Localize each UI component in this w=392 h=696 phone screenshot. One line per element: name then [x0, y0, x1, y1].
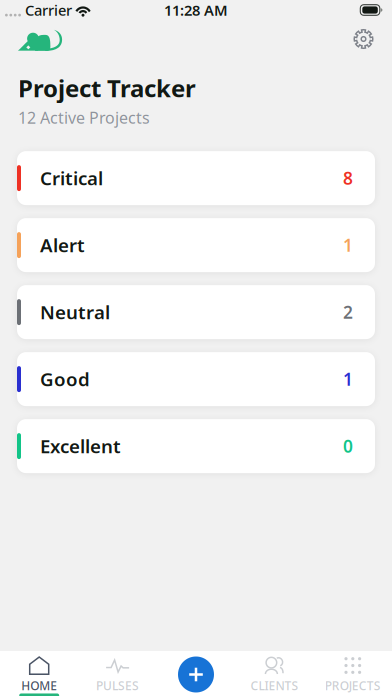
staticText: Excellent: [40, 434, 121, 458]
staticText: 1: [343, 234, 353, 257]
staticText: Good: [40, 367, 90, 391]
staticText: Carrier: [25, 0, 72, 20]
button[interactable]: Good: [17, 352, 375, 406]
staticText: Project Tracker: [18, 72, 196, 104]
staticText: HOME: [21, 677, 57, 693]
staticText: 1: [343, 368, 353, 391]
button[interactable]: Critical: [17, 151, 375, 205]
staticText: Critical: [40, 166, 103, 190]
staticText: 11:28 AM: [164, 0, 228, 20]
staticText: 2: [343, 301, 353, 324]
staticText: PULSES: [96, 677, 139, 693]
button[interactable]: PROJECTS: [314, 650, 392, 696]
button[interactable]: HOME: [0, 650, 78, 696]
button[interactable]: Settings: [349, 22, 378, 53]
button[interactable]: Add: [157, 650, 235, 696]
button[interactable]: PULSES: [78, 650, 157, 696]
button[interactable]: CLIENTS: [235, 650, 314, 696]
staticText: 12 Active Projects: [18, 107, 150, 128]
staticText: CLIENTS: [250, 677, 298, 693]
button[interactable]: Alert: [17, 218, 375, 272]
staticText: PROJECTS: [325, 677, 381, 693]
staticText: 0: [343, 435, 353, 458]
staticText: 8: [343, 167, 353, 190]
staticText: Alert: [40, 233, 85, 257]
button[interactable]: Neutral: [17, 285, 375, 339]
staticText: Neutral: [40, 300, 110, 324]
button[interactable]: Excellent: [17, 419, 375, 473]
